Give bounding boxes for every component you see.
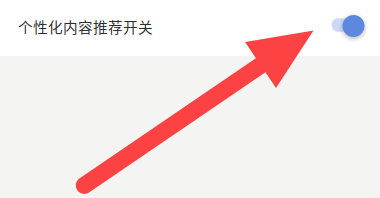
button[interactable]: 个性化内容推荐开关 — [0, 0, 380, 56]
staticText: 个性化内容推荐开关 — [18, 16, 153, 37]
